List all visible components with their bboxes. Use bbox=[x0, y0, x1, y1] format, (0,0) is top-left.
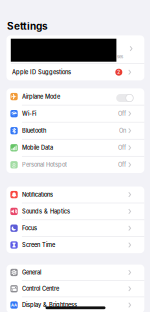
staticText: Bluetooth bbox=[22, 127, 46, 134]
staticText: Wi-Fi bbox=[22, 110, 36, 117]
staticText: Sounds & Haptics bbox=[22, 208, 70, 215]
staticText: Display & Brightness bbox=[22, 302, 77, 308]
staticText: Screen Time bbox=[22, 242, 55, 248]
staticText: Mobile Data bbox=[22, 144, 53, 151]
staticText: Notifications bbox=[22, 191, 53, 198]
button[interactable]: Control Centre bbox=[6, 281, 144, 297]
staticText: Off bbox=[118, 110, 126, 117]
staticText: Off bbox=[118, 161, 126, 168]
staticText: Airplane Mode bbox=[22, 93, 60, 100]
button[interactable]: Sounds & Haptics bbox=[6, 203, 144, 219]
button[interactable]: Apple ID bbox=[6, 35, 144, 63]
button[interactable]: Airplane Mode bbox=[6, 88, 144, 105]
button[interactable]: Mobile Data bbox=[6, 139, 144, 156]
staticText: On bbox=[119, 127, 126, 134]
button[interactable]: Bluetooth bbox=[6, 122, 144, 139]
button[interactable]: General bbox=[6, 265, 144, 280]
staticText: Personal Hotspot bbox=[22, 161, 67, 168]
button[interactable]: Wi-Fi bbox=[6, 105, 144, 122]
button[interactable]: Personal Hotspot bbox=[6, 157, 144, 173]
button[interactable]: Notifications bbox=[6, 186, 144, 203]
button[interactable]: AA bbox=[6, 297, 144, 312]
staticText: Settings bbox=[7, 20, 48, 32]
staticText: General bbox=[22, 269, 41, 276]
staticText: Apple ID Suggestions bbox=[12, 69, 71, 76]
staticText: ses bbox=[117, 54, 123, 59]
staticText: AA bbox=[11, 303, 17, 307]
staticText: Off bbox=[118, 144, 126, 151]
staticText: Focus bbox=[22, 225, 37, 232]
button[interactable]: Apple ID Suggestions bbox=[6, 64, 144, 80]
staticText: 2 bbox=[117, 69, 120, 75]
button[interactable]: Focus bbox=[6, 220, 144, 236]
button[interactable]: Screen Time bbox=[6, 237, 144, 253]
staticText: Control Centre bbox=[22, 285, 59, 292]
